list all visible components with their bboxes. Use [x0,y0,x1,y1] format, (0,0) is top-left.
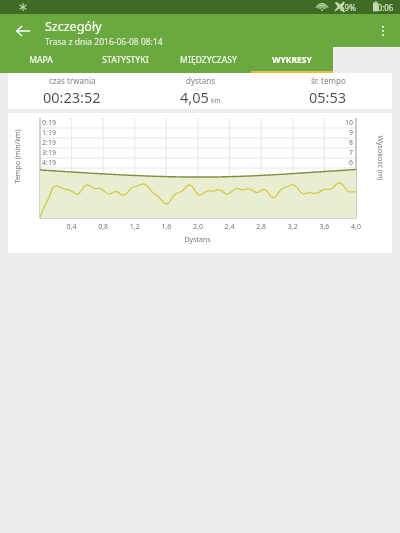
staticText: km [211,96,221,105]
staticText: dystans [186,75,215,86]
staticText: MIĘDZYCZASY [180,54,237,66]
staticText: STATYSTYKI [102,54,149,66]
button[interactable]: MAPA [0,47,82,73]
staticText: Szczegóły [45,18,102,35]
staticText: 4,05 [180,87,209,107]
staticText: 59% [340,2,356,13]
staticText: 00:23:52 [43,87,101,107]
staticText: Trasa z dnia 2016-06-08 08:14 [45,36,163,48]
staticText: śr. tempo [311,75,346,86]
button[interactable]: czas trwania [8,73,136,109]
staticText: Tempo (min/km) [12,128,22,183]
button[interactable]: Tempo (min/km) [8,113,392,253]
button[interactable]: WYKRESY [251,47,333,73]
staticText: MAPA [29,54,53,66]
staticText: 10:06 [373,2,394,13]
staticText: czas trwania [49,75,96,86]
button[interactable]: STATYSTYKI [84,47,166,73]
staticText: 05:53 [309,87,347,107]
button[interactable]: More options [371,19,395,43]
staticText: WYKRESY [272,54,312,66]
staticText: Wysokość (m) [374,135,384,180]
button[interactable]: śr. tempo [264,73,392,109]
button[interactable]: Back [10,18,36,44]
button[interactable]: dystans [136,73,264,109]
button[interactable]: MIĘDZYCZASY [167,47,249,73]
